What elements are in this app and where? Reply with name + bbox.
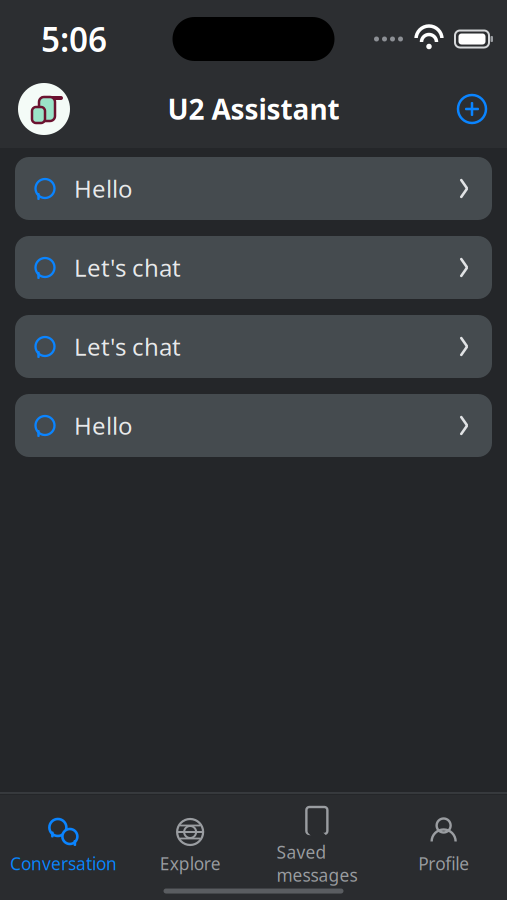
button[interactable]: Let's chat xyxy=(15,315,492,378)
staticText: Profile xyxy=(418,852,469,875)
button[interactable]: Saved messages xyxy=(253,803,380,888)
staticText: Hello xyxy=(74,410,133,441)
button[interactable]: Explore xyxy=(127,815,254,877)
staticText: Saved messages xyxy=(276,840,357,886)
staticText: Explore xyxy=(160,852,221,875)
staticText: Conversation xyxy=(10,852,117,875)
button[interactable]: Hello xyxy=(15,394,492,457)
button[interactable]: New conversation xyxy=(455,92,489,126)
button[interactable]: Profile xyxy=(380,815,507,877)
staticText: U2 Assistant xyxy=(167,90,339,128)
button[interactable]: Conversation xyxy=(0,815,127,877)
staticText: 5:06 xyxy=(41,17,107,61)
staticText: Hello xyxy=(74,173,133,204)
button[interactable]: Hello xyxy=(15,157,492,220)
button[interactable]: Let's chat xyxy=(15,236,492,299)
staticText: Let's chat xyxy=(74,252,181,283)
button[interactable]: Profile avatar xyxy=(18,83,70,135)
staticText: Let's chat xyxy=(74,331,181,362)
